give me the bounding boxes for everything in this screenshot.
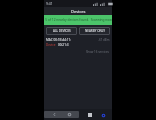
staticText: 5 of 12 nearby devices found. Scanning n… bbox=[45, 18, 112, 22]
button[interactable]: NEARBY ONLY bbox=[79, 27, 110, 35]
staticText: Device bbox=[46, 43, 56, 47]
staticText: Devices bbox=[71, 9, 86, 14]
button[interactable]: ALL DEVICES bbox=[46, 27, 77, 35]
staticText: ALL DEVICES bbox=[53, 29, 71, 33]
button[interactable]: Recent apps bbox=[86, 111, 94, 119]
staticText: Show 16 services bbox=[86, 50, 109, 54]
button[interactable]: Show 16 services bbox=[85, 50, 110, 54]
button[interactable]: 5 of 12 nearby devices found. Scanning n… bbox=[44, 15, 112, 25]
staticText: MAC 00:1B:44:11:3A:B7 Bluetooth LE bbox=[46, 38, 72, 42]
staticText: NEARBY ONLY bbox=[85, 29, 105, 33]
button[interactable]: Home bbox=[65, 111, 73, 118]
staticText: -67 dBm bbox=[98, 38, 110, 42]
button[interactable]: Back bbox=[50, 111, 58, 118]
staticText: 00:21:3 bbox=[58, 43, 69, 47]
button[interactable]: Assistant bbox=[99, 111, 107, 119]
button[interactable]: MAC 00:1B:44:11:3A:B7 Bluetooth LE bbox=[44, 37, 112, 55]
staticText: 9:41 bbox=[46, 1, 53, 6]
